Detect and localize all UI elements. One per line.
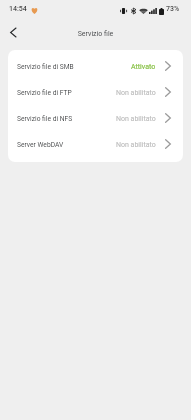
staticText: Server WebDAV bbox=[17, 141, 64, 149]
staticText: Attivato bbox=[131, 63, 156, 71]
button[interactable]: Servizio file di SMB bbox=[8, 54, 183, 80]
staticText: Servizio file di NFS bbox=[17, 115, 73, 123]
staticText: Servizio file di FTP bbox=[17, 89, 72, 97]
button[interactable]: Servizio file di NFS bbox=[8, 106, 183, 132]
staticText: Non abilitato bbox=[116, 115, 156, 123]
staticText: Non abilitato bbox=[116, 89, 156, 97]
button[interactable]: Server WebDAV bbox=[8, 132, 183, 158]
staticText: Non abilitato bbox=[116, 141, 156, 149]
staticText: Servizio file bbox=[0, 30, 191, 38]
button[interactable]: Back bbox=[2, 22, 23, 43]
staticText: Servizio file di SMB bbox=[17, 63, 74, 71]
button[interactable]: Servizio file di FTP bbox=[8, 80, 183, 106]
staticText: 73% bbox=[166, 5, 180, 13]
staticText: 14:54 bbox=[9, 5, 27, 13]
